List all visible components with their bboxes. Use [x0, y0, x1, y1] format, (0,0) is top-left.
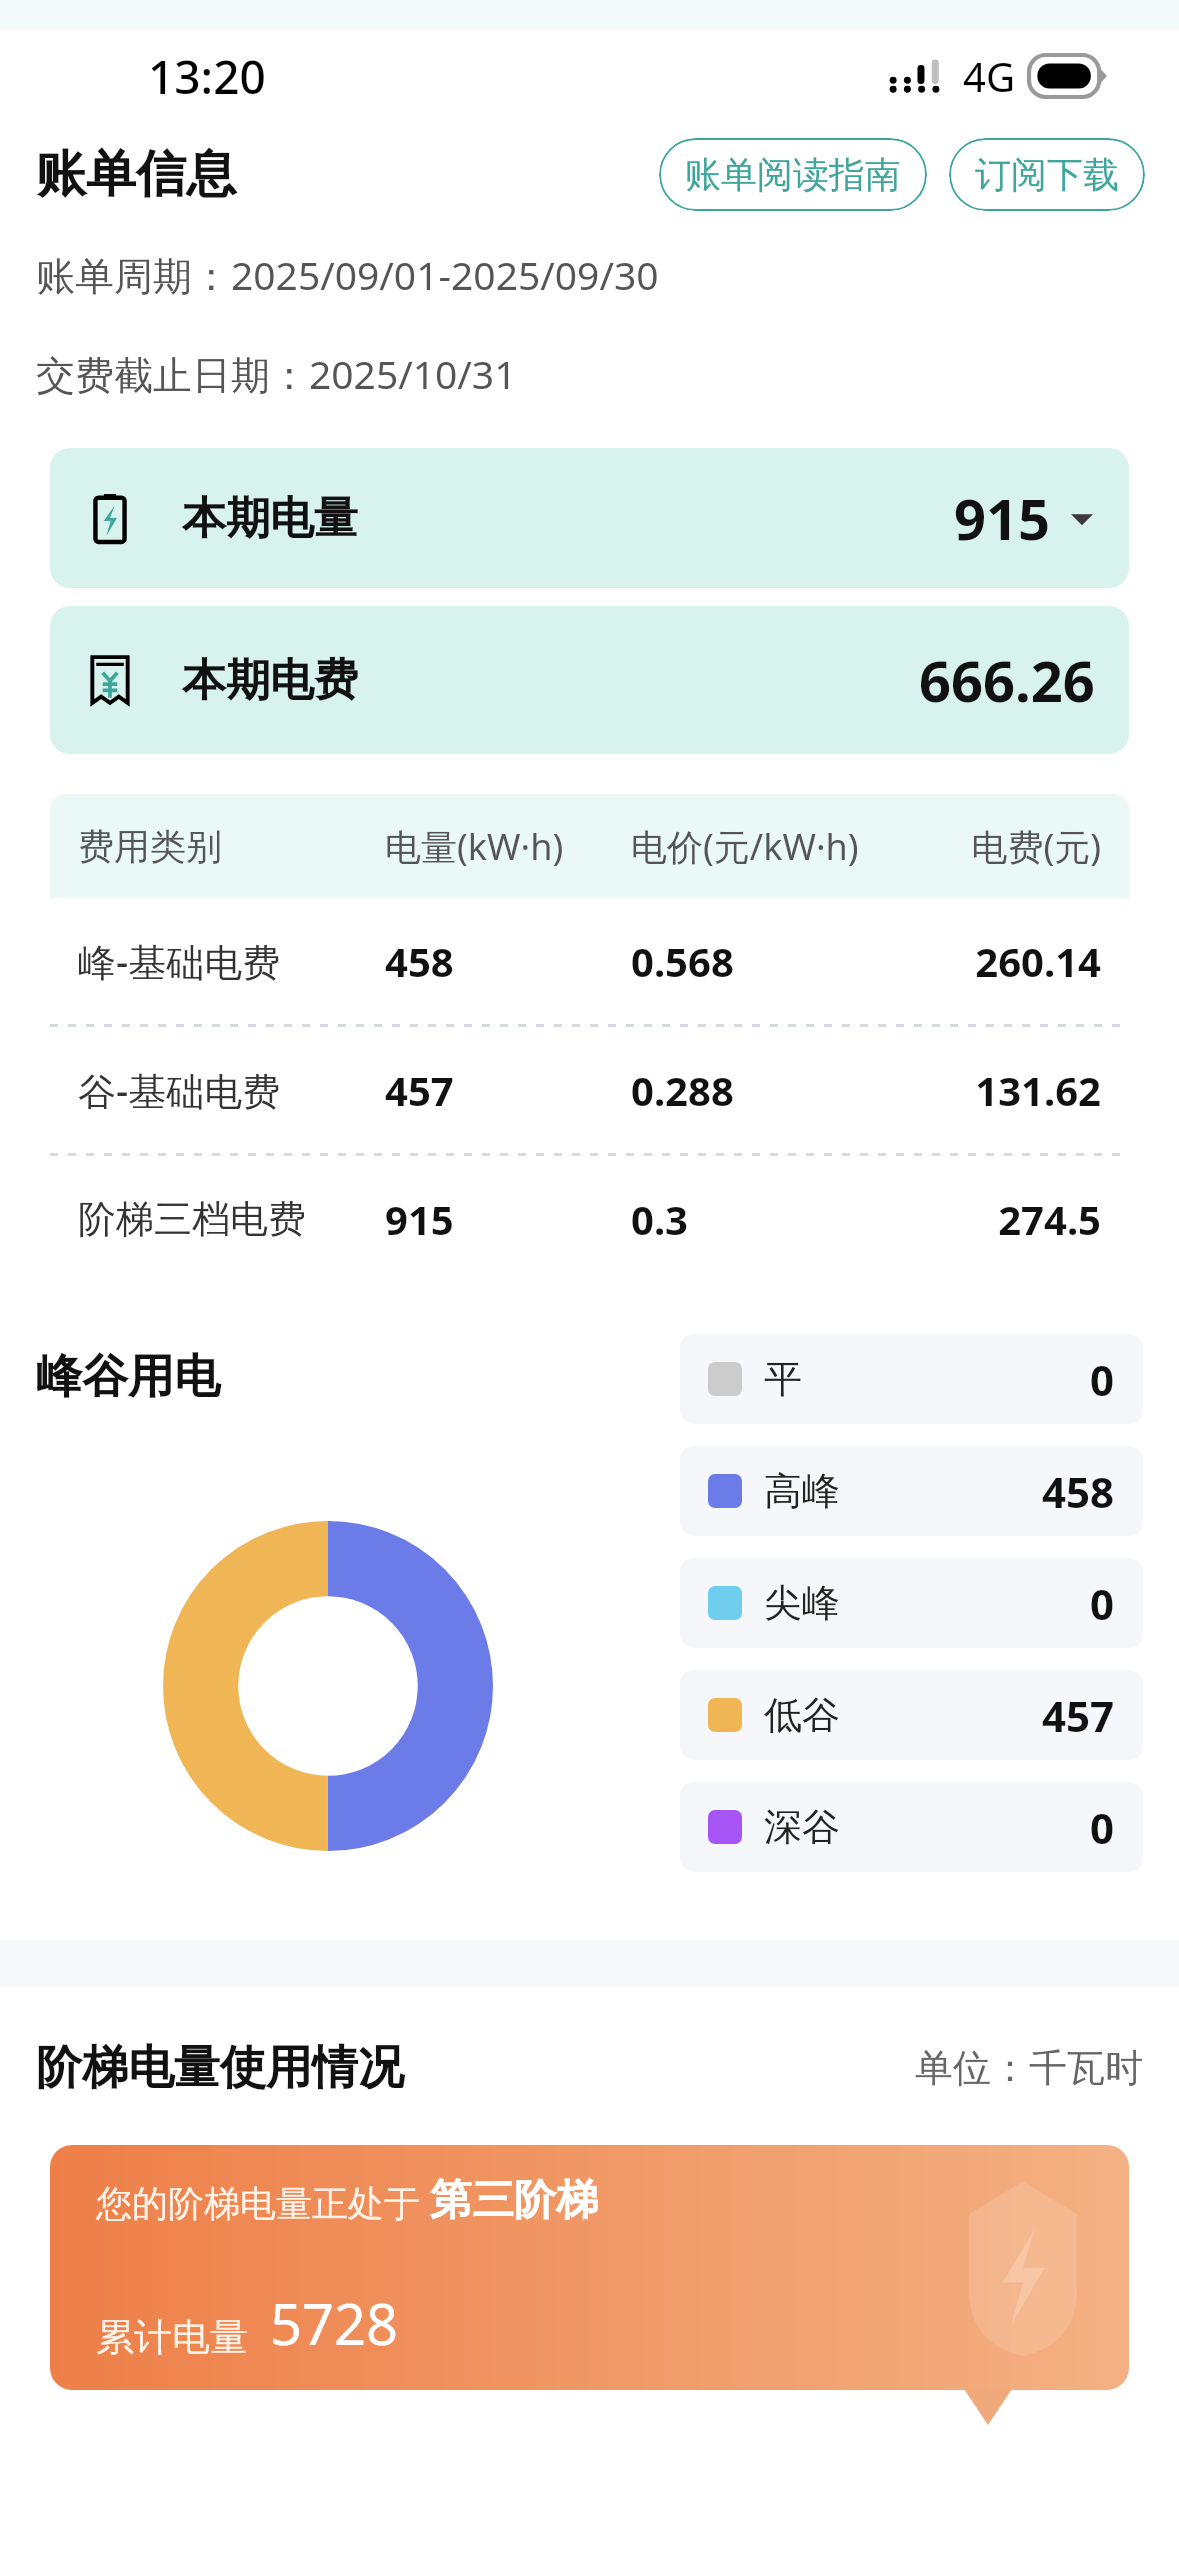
staticText: 5728 [270, 2285, 399, 2361]
button[interactable]: 低谷 [680, 1670, 1143, 1760]
staticText: 阶梯电量使用情况 [36, 2039, 404, 2097]
staticText: 915 [385, 1192, 631, 1246]
staticText: 13:20 [148, 45, 266, 108]
staticText: 131.62 [917, 1063, 1101, 1117]
staticText: 458 [385, 934, 631, 988]
staticText: 260.14 [917, 934, 1101, 988]
staticText: 交费截止日期：2025/10/31 [36, 347, 517, 400]
staticText: 电费(元) [917, 822, 1101, 871]
staticText: 订阅下载 [975, 152, 1119, 197]
staticText: 457 [1042, 1687, 1115, 1744]
staticText: 您的阶梯电量正处于 [96, 2178, 430, 2227]
staticText: 账单阅读指南 [685, 152, 901, 197]
staticText: 阶梯三档电费 [78, 1195, 385, 1243]
button[interactable]: 本期电费 [50, 606, 1129, 754]
staticText: 0.568 [631, 934, 917, 988]
staticText: 电量(kW·h) [385, 822, 631, 871]
staticText: 915 [954, 480, 1051, 556]
button[interactable]: 峰-基础电费 [50, 898, 1129, 1024]
staticText: 666.26 [919, 642, 1095, 718]
button[interactable]: 您的阶梯电量正处于 [50, 2145, 1129, 2390]
staticText: 0 [1090, 1575, 1115, 1632]
staticText: 本期电费 [182, 653, 358, 708]
staticText: 第三阶梯 [430, 2174, 598, 2227]
button[interactable]: 谷-基础电费 [50, 1027, 1129, 1153]
staticText: 谷-基础电费 [78, 1064, 385, 1116]
staticText: 0 [1090, 1351, 1115, 1408]
staticText: 峰谷用电 [36, 1348, 220, 1406]
staticText: 账单周期：2025/09/01-2025/09/30 [36, 248, 659, 301]
staticText: 低谷 [764, 1691, 840, 1739]
staticText: 0 [1090, 1799, 1115, 1856]
button[interactable]: 本期电量 [50, 448, 1129, 588]
button[interactable]: 订阅下载 [949, 138, 1145, 211]
staticText: 深谷 [764, 1803, 840, 1851]
staticText: 电价(元/kW·h) [631, 822, 917, 871]
button[interactable]: 账单阅读指南 [659, 138, 927, 211]
staticText: 本期电量 [182, 491, 358, 546]
staticText: 高峰 [764, 1467, 840, 1515]
staticText: 0.288 [631, 1063, 917, 1117]
staticText: 峰-基础电费 [78, 935, 385, 987]
staticText: 累计电量 [96, 2313, 248, 2361]
staticText: 457 [385, 1063, 631, 1117]
staticText: 0.3 [631, 1192, 917, 1246]
button[interactable]: 尖峰 [680, 1558, 1143, 1648]
staticText: 单位：千瓦时 [915, 2044, 1143, 2092]
staticText: 4G [963, 49, 1015, 103]
button[interactable]: 高峰 [680, 1446, 1143, 1536]
staticText: 274.5 [917, 1192, 1101, 1246]
staticText: 费用类别 [78, 824, 385, 869]
staticText: 账单信息 [36, 143, 236, 206]
staticText: 458 [1042, 1463, 1115, 1520]
button[interactable]: 深谷 [680, 1782, 1143, 1872]
button[interactable]: 平 [680, 1334, 1143, 1424]
button[interactable]: 阶梯三档电费 [50, 1156, 1129, 1282]
staticText: 尖峰 [764, 1579, 840, 1627]
staticText: 平 [764, 1355, 802, 1403]
